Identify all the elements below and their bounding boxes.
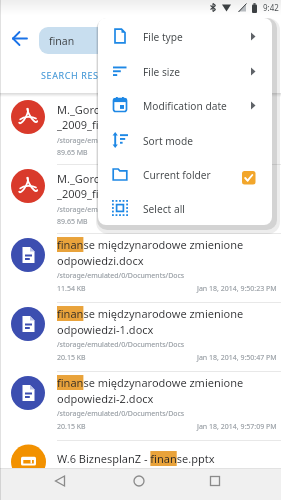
staticText: 20.15 KB [57, 353, 86, 363]
button[interactable]: M._Gorczyńska [0, 96, 281, 165]
button[interactable]: Current folder [98, 157, 272, 191]
staticText: 11.54 KB [57, 284, 86, 294]
staticText: 20.15 KB [57, 422, 86, 432]
staticText: 89.65 MB [57, 148, 88, 158]
staticText: Select all [143, 202, 185, 216]
staticText: SEARCH RESULTS [41, 69, 122, 81]
staticText: finan [49, 34, 75, 48]
staticText: 9:42 [263, 2, 279, 13]
button[interactable]: File type [98, 19, 272, 53]
button[interactable]: W.6 BiznesplanZ - finanse.pptx [0, 441, 281, 500]
button[interactable]: finan [39, 27, 254, 54]
staticText: odpowiedzi-2.docx [57, 391, 154, 406]
button[interactable]: finanse międzynarodowe zmienione [0, 372, 281, 441]
staticText: /storage/emulated/0/Documents/Docs [57, 271, 185, 281]
button[interactable]: finanse międzynarodowe zmienione [0, 234, 281, 303]
button[interactable] [52, 473, 68, 489]
staticText: Jan 18, 2014, 9:57:09 PM [197, 422, 277, 432]
staticText: finanse międzynarodowe zmienione [57, 237, 244, 252]
button[interactable]: Sort mode [98, 123, 272, 157]
button[interactable]: finanse międzynarodowe zmienione [0, 303, 281, 372]
staticText: odpowiedzi-1.docx [57, 322, 154, 337]
staticText: odpowiedzi.docx [57, 253, 144, 268]
staticText: File size [143, 65, 180, 79]
staticText: Modification date [143, 99, 227, 113]
staticText: /storage/emulated/0/Documents/Docs [57, 409, 185, 419]
staticText: Current folder [143, 168, 211, 182]
staticText: _2009_finanse.pdf [57, 117, 151, 132]
button[interactable]: Select all [98, 191, 272, 225]
button[interactable] [207, 473, 223, 489]
staticText: File type [143, 30, 183, 44]
button[interactable] [12, 31, 28, 46]
staticText: Jan 18, 2014, 9:50:23 PM [197, 284, 277, 294]
button[interactable] [131, 473, 147, 489]
staticText: M._Gorczyńska [57, 102, 134, 117]
button[interactable]: M._Gorczyńska [0, 165, 281, 234]
button[interactable]: Modification date [98, 88, 272, 122]
staticText: finanse międzynarodowe zmienione [57, 375, 244, 390]
staticText: /storage/emulated/0/Documents [57, 205, 166, 215]
staticText: W.6 BiznesplanZ - finanse.pptx [57, 451, 215, 466]
staticText: 89.65 MB [57, 217, 88, 227]
staticText: /storage/emulated/0/Documents [57, 136, 166, 146]
button[interactable]: File size [98, 54, 272, 88]
staticText: /storage/emulated/0/Documents/Docs [57, 340, 185, 350]
staticText: _2009_finanse.pdf [57, 186, 151, 201]
staticText: Sort mode [143, 134, 193, 148]
staticText: Jan 18, 2014, 9:50:47 PM [197, 353, 277, 363]
staticText: M._Gorczyńska [57, 171, 134, 186]
staticText: finanse międzynarodowe zmienione [57, 306, 244, 321]
